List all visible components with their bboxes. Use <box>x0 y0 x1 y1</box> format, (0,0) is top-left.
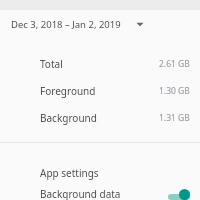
staticText: 1.31 GB <box>159 112 190 124</box>
staticText: Foreground <box>40 84 96 98</box>
button[interactable]: Dec 3, 2018 – Jan 2, 2019 <box>0 10 200 38</box>
button[interactable]: App settings <box>0 159 200 187</box>
button[interactable]: Background <box>0 104 200 131</box>
staticText: 2.61 GB <box>159 58 190 70</box>
staticText: App settings <box>40 166 99 180</box>
staticText: Background data <box>40 187 121 200</box>
button[interactable]: Total <box>0 50 200 77</box>
button[interactable]: Background data <box>0 187 200 200</box>
staticText: 1.30 GB <box>159 85 190 97</box>
staticText: Background <box>40 111 97 125</box>
other: Background data toggle <box>168 187 190 200</box>
other: Change date range <box>135 19 145 29</box>
staticText: Total <box>40 57 63 71</box>
staticText: Dec 3, 2018 – Jan 2, 2019 <box>11 18 121 31</box>
button[interactable]: Foreground <box>0 77 200 104</box>
